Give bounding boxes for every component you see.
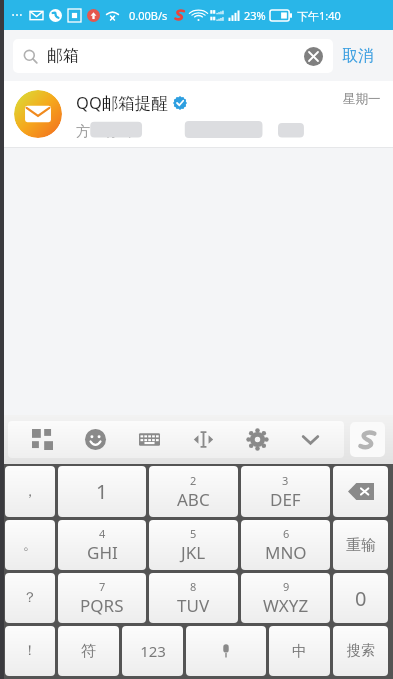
button[interactable]: Clear search [304,47,323,66]
button[interactable]: 重输 [333,520,388,570]
staticText: ， [23,483,37,501]
staticText: JKL [181,541,206,564]
staticText: WXYZ [263,594,309,617]
button[interactable]: 。 [5,520,55,570]
button[interactable]: Sogou input method [350,422,385,457]
button[interactable]: Emoji [75,421,115,458]
button[interactable]: 邮箱 [13,39,333,73]
staticText: TUV [177,594,210,617]
button[interactable]: 中 [269,626,330,676]
button[interactable]: 123 [122,626,183,676]
staticText: ？ [23,589,37,607]
staticText: 搜索 [347,642,375,660]
staticText: 8 [190,579,197,594]
button[interactable]: 搜索 [333,626,388,676]
staticText: 1 [96,478,108,505]
staticText: ！ [23,642,37,660]
button[interactable]: 0 [333,573,388,623]
staticText: MNO [265,541,307,564]
button[interactable]: ？ [5,573,55,623]
staticText: 。 [23,536,37,554]
button[interactable]: Hide keyboard [290,421,330,458]
staticText: 星期一 [343,91,381,107]
button[interactable]: 8 [149,573,238,623]
staticText: 2 [190,473,197,488]
staticText: 中 [292,642,307,661]
staticText: ABC [177,488,210,511]
staticText: 4 [99,526,106,541]
button[interactable]: Apps [22,421,62,458]
button[interactable]: 1 [58,466,146,517]
staticText: 6 [283,526,290,541]
staticText: 0.00B/s [129,8,168,23]
button[interactable]: Settings [237,421,277,458]
staticText: 0 [355,585,367,612]
button[interactable]: Voice input [186,626,266,676]
button[interactable]: Cursor move [183,421,223,458]
staticText: 5 [190,526,197,541]
button[interactable]: 3 [241,466,330,517]
staticText: DEF [270,488,301,511]
staticText: 23% [244,8,266,23]
button[interactable]: 符 [58,626,119,676]
button[interactable]: ！ [5,626,55,676]
button[interactable]: Backspace [333,466,388,517]
staticText: 重输 [346,536,376,555]
button[interactable]: 9 [241,573,330,623]
staticText: 下午1:40 [297,8,341,23]
button[interactable]: 7 [58,573,146,623]
staticText: 3 [282,473,289,488]
staticText: 邮箱 [47,46,79,66]
button[interactable]: 6 [241,520,330,570]
staticText: PQRS [80,594,124,617]
staticText: 符 [81,642,96,661]
button[interactable]: ， [5,466,55,517]
button[interactable]: QQ邮箱提醒 [0,81,393,147]
button[interactable]: 2 [149,466,238,517]
staticText: 123 [140,641,166,661]
button[interactable]: 取消 [333,40,383,72]
staticText: GHI [87,541,118,564]
staticText: 9 [283,579,290,594]
staticText: 取消 [342,46,374,66]
staticText: 7 [99,579,106,594]
button[interactable]: Keyboard layout [129,421,169,458]
button[interactable]: 5 [149,520,238,570]
button[interactable]: 4 [58,520,146,570]
staticText: QQ邮箱提醒 [76,91,168,114]
staticText: 方 : 你 在 ... [76,121,221,138]
